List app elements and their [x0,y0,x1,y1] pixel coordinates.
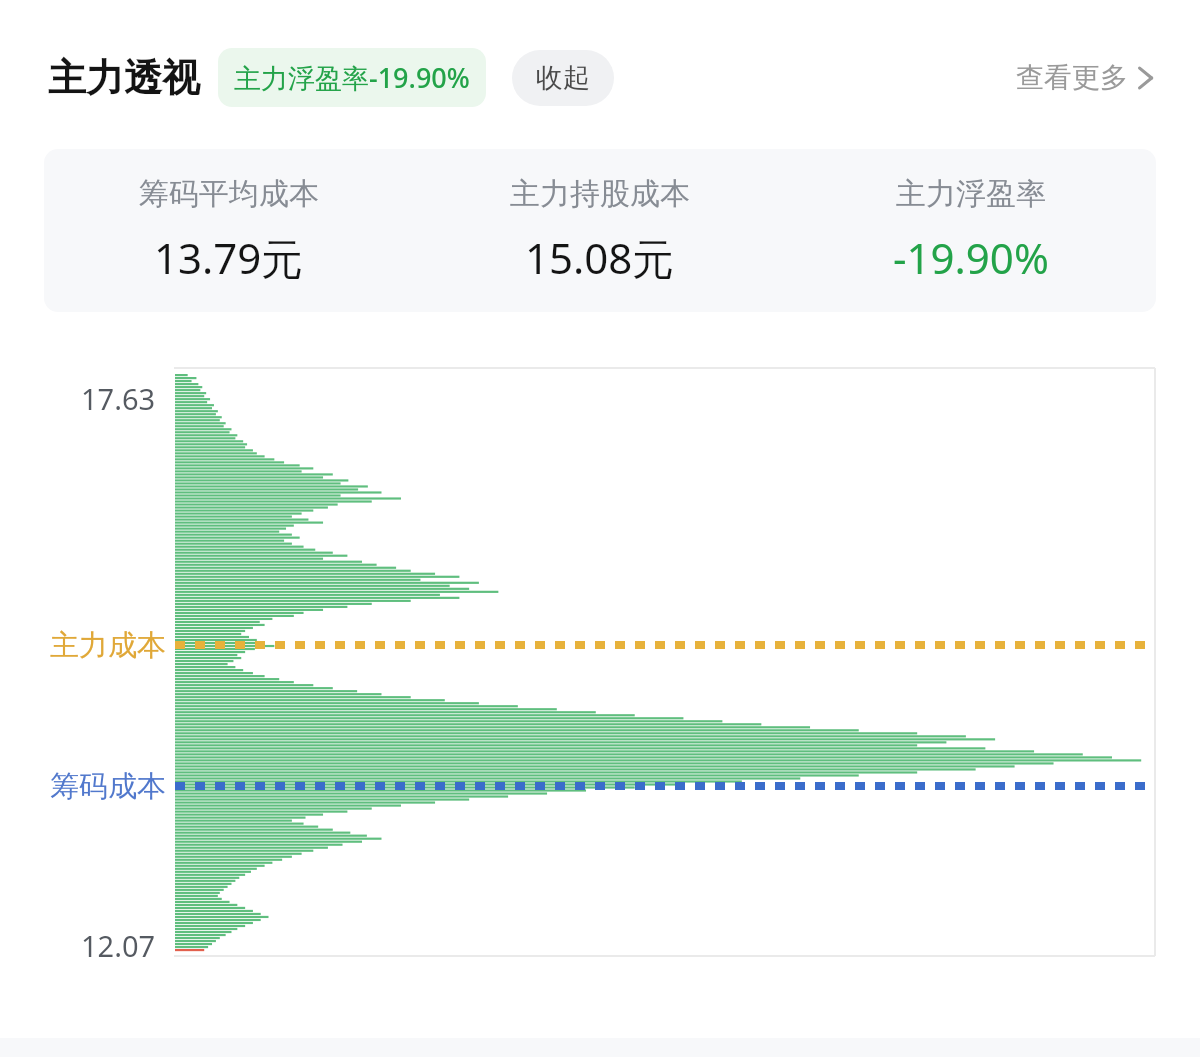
staticText: 查看更多 [1016,60,1128,95]
staticText: 筹码平均成本 [139,175,319,213]
button[interactable]: 查看更多 [1010,54,1160,101]
button[interactable]: 主力浮盈率-19.90% [218,48,486,107]
staticText: 主力成本 [50,627,166,664]
staticText: 主力浮盈率-19.90% [234,59,470,96]
staticText: 主力透视 [48,54,200,102]
staticText: 主力浮盈率 [896,175,1046,213]
button[interactable]: 筹码平均成本 [44,149,1156,312]
button[interactable]: 收起 [512,50,614,106]
staticText: 收起 [536,61,590,95]
staticText: 15.08元 [525,229,675,286]
staticText: 12.07 [81,926,156,965]
staticText: -19.90% [893,229,1049,286]
staticText: 17.63 [81,379,156,418]
staticText: 13.79元 [154,229,304,286]
staticText: 筹码成本 [50,768,166,805]
staticText: 主力持股成本 [510,175,690,213]
